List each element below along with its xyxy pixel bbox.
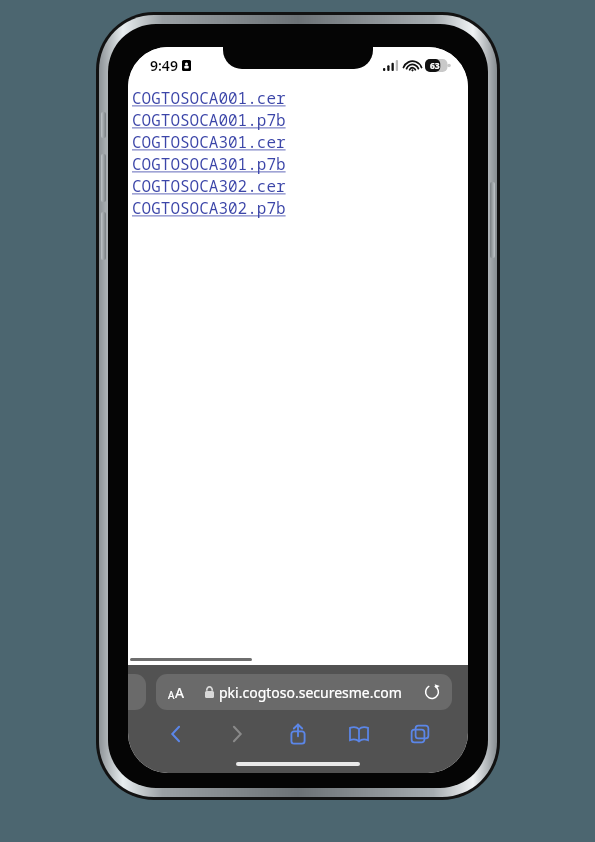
button[interactable]: COGTOSOCA001.p7b (132, 109, 286, 131)
staticText: COGTOSOCA001.p7b (132, 109, 286, 131)
button[interactable]: COGTOSOCA302.p7b (132, 197, 286, 219)
button[interactable]: Text size (168, 683, 184, 702)
button[interactable]: Bookmarks (328, 717, 389, 751)
staticText: COGTOSOCA301.p7b (132, 153, 286, 175)
button[interactable]: COGTOSOCA302.cer (132, 175, 286, 197)
staticText: COGTOSOCA001.cer (132, 87, 286, 109)
staticText: COGTOSOCA301.cer (132, 131, 286, 153)
staticText: COGTOSOCA302.p7b (132, 197, 286, 219)
button[interactable]: Reload (424, 684, 440, 700)
button[interactable]: Text size (156, 674, 452, 710)
staticText: 9:49 (150, 56, 178, 75)
staticText: 63 (430, 60, 440, 72)
staticText: A (175, 683, 184, 702)
staticText: A (168, 688, 175, 702)
button[interactable]: Forward (206, 717, 267, 751)
button[interactable]: Back (146, 717, 206, 751)
button[interactable]: COGTOSOCA001.cer (132, 87, 286, 109)
staticText: pki.cogtoso.securesme.com (219, 683, 402, 702)
button[interactable]: Share (267, 717, 328, 751)
button[interactable]: COGTOSOCA301.cer (132, 131, 286, 153)
button[interactable]: Tabs (389, 717, 450, 751)
staticText: COGTOSOCA302.cer (132, 175, 286, 197)
button[interactable]: COGTOSOCA301.p7b (132, 153, 286, 175)
